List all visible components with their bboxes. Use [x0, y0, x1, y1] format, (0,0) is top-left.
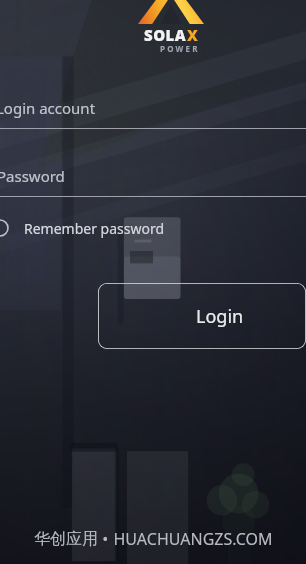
button[interactable]: Login account: [0, 88, 306, 129]
other: Remember password: [0, 219, 9, 237]
staticText: Login: [196, 304, 244, 329]
staticText: •: [98, 528, 113, 550]
staticText: 华创应用: [34, 529, 98, 549]
button[interactable]: Login: [98, 283, 306, 349]
staticText: Remember password: [24, 219, 165, 238]
staticText: Password: [0, 166, 65, 186]
button[interactable]: Remember password: [0, 211, 306, 245]
staticText: Login account: [0, 98, 96, 118]
staticText: X: [187, 25, 199, 45]
staticText: HUACHUANGZS.COM: [113, 528, 273, 550]
staticText: POWER: [160, 43, 200, 54]
staticText: SOLA: [144, 25, 187, 45]
button[interactable]: Password: [0, 156, 306, 197]
